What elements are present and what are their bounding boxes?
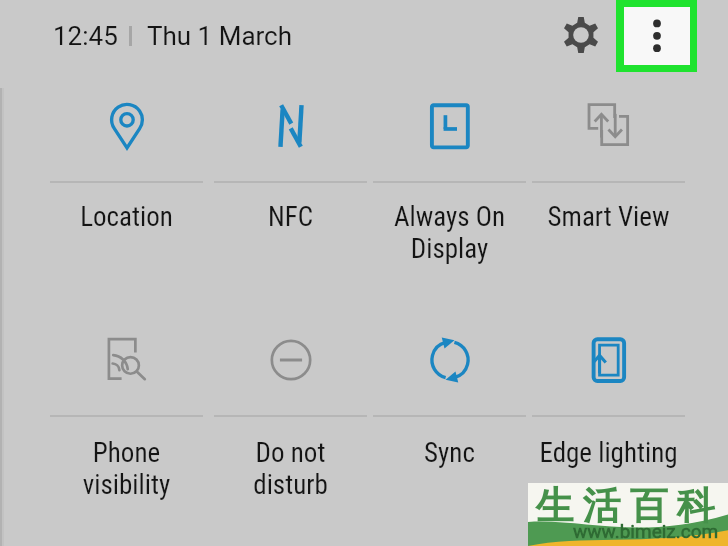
staticText: www.bimeiz.com <box>573 520 719 542</box>
staticText: Sync <box>353 437 546 469</box>
button[interactable]: Settings <box>556 10 606 60</box>
button[interactable]: More options <box>624 7 690 65</box>
button[interactable]: Smart View <box>532 96 685 284</box>
staticText: Smart View <box>512 201 705 233</box>
staticText: 生活百科 <box>531 482 719 530</box>
staticText: Thu 1 March <box>147 21 293 51</box>
button[interactable]: Do not disturb <box>214 330 367 518</box>
staticText: 12:45 <box>53 21 118 51</box>
button[interactable]: Location <box>50 96 203 284</box>
button[interactable]: Sync <box>373 330 526 518</box>
staticText: Edge lighting <box>512 437 705 469</box>
staticText: Phone visibility <box>30 437 223 501</box>
button[interactable]: Phone visibility <box>50 330 203 518</box>
button[interactable]: NFC <box>214 96 367 284</box>
staticText: NFC <box>194 201 387 233</box>
staticText: Do not disturb <box>194 437 387 501</box>
button[interactable]: Edge lighting <box>532 330 685 518</box>
button[interactable]: Always On Display <box>373 96 526 284</box>
staticText: Location <box>30 201 223 233</box>
staticText: Always On Display <box>353 201 546 265</box>
